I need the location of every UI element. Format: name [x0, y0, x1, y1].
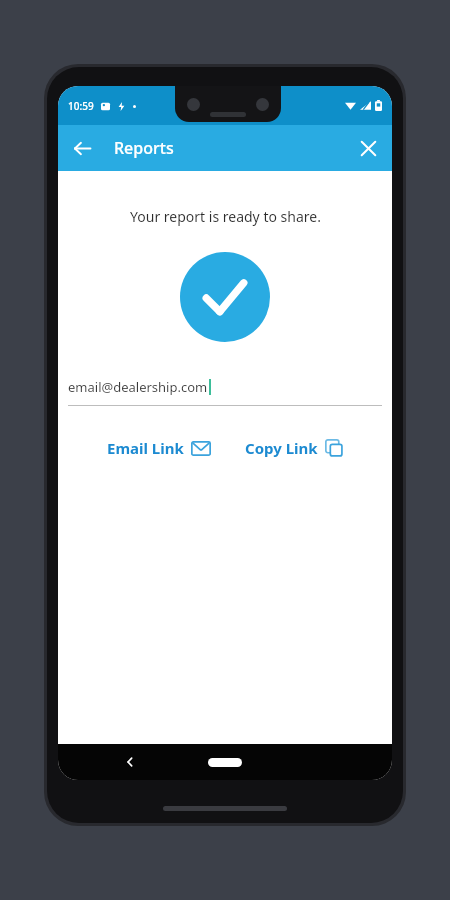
button[interactable]: Copy Link [241, 434, 348, 462]
button[interactable]: email@dealership.com [68, 378, 382, 396]
staticText: Email Link [107, 438, 184, 458]
button[interactable]: Navigate up [64, 130, 100, 166]
staticText: Reports [114, 137, 174, 159]
staticText: Copy Link [245, 438, 318, 458]
button[interactable]: Back [118, 750, 142, 774]
button[interactable]: Home [208, 758, 242, 767]
button[interactable]: Email Link [103, 434, 215, 462]
staticText: email@dealership.com [68, 378, 208, 396]
button[interactable]: Close [350, 130, 386, 166]
staticText: 10:59 [68, 99, 94, 113]
staticText: Your report is ready to share. [130, 207, 321, 226]
